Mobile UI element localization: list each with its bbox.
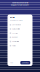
staticText: Notes [12, 45, 16, 47]
staticText: Date and time [12, 28, 20, 30]
staticText: Budget [12, 36, 17, 38]
staticText: Contact info [12, 41, 19, 42]
staticText: Location [12, 32, 18, 34]
staticText: Review everything [10, 20, 23, 21]
staticText: REQUESTS FOR 1000 OFF [11, 4, 29, 6]
staticText: Total [10, 62, 13, 64]
staticText: Service type [12, 24, 21, 26]
staticText: TURN THE EXPERT OF MY [11, 2, 28, 4]
staticText: Details [10, 16, 15, 18]
staticText: Continue [22, 62, 29, 64]
button[interactable]: Continue [20, 61, 30, 64]
